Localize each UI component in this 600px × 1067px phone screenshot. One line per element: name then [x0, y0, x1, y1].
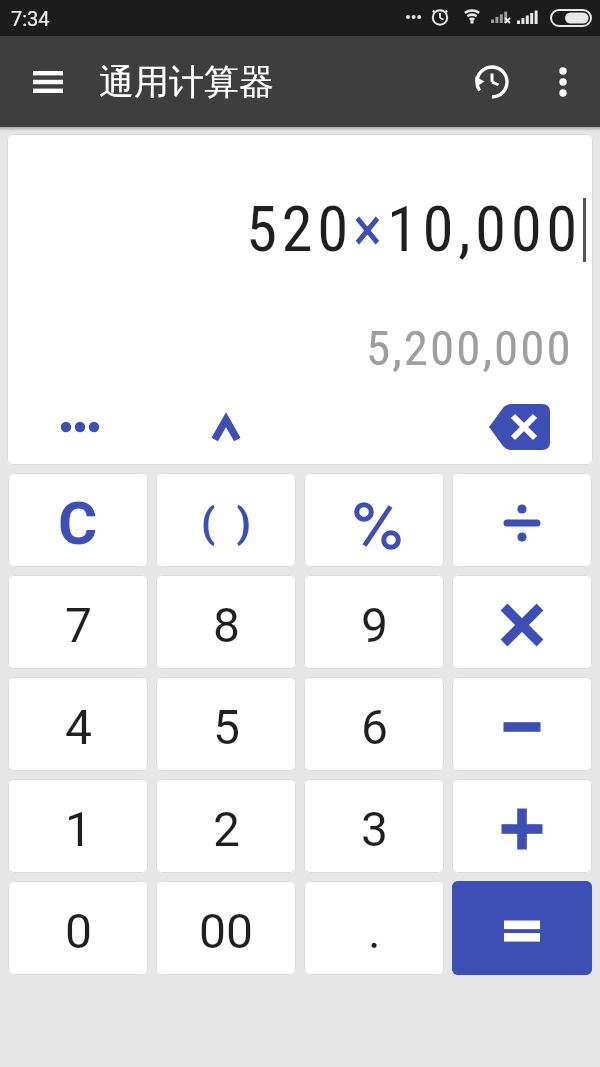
- button[interactable]: 7: [8, 575, 148, 669]
- staticText: 8: [213, 597, 240, 653]
- button[interactable]: 9: [304, 575, 444, 669]
- button[interactable]: [452, 881, 592, 975]
- staticText: 7: [65, 597, 92, 653]
- button[interactable]: 4: [8, 677, 148, 771]
- button[interactable]: [7, 389, 153, 465]
- button[interactable]: [452, 779, 592, 873]
- staticText: 2: [213, 801, 240, 857]
- button[interactable]: 6: [304, 677, 444, 771]
- staticText: 7:34: [11, 7, 50, 30]
- staticText: C: [58, 488, 98, 558]
- button[interactable]: [540, 59, 586, 105]
- staticText: (): [201, 499, 272, 547]
- staticText: 520×10,000: [246, 193, 582, 267]
- button[interactable]: [304, 473, 444, 567]
- staticText: 通用计算器: [99, 60, 274, 104]
- button[interactable]: 8: [156, 575, 296, 669]
- staticText: 6: [361, 699, 388, 755]
- button[interactable]: 3: [304, 779, 444, 873]
- button[interactable]: 5: [156, 677, 296, 771]
- button[interactable]: [153, 389, 299, 465]
- button[interactable]: (): [156, 473, 296, 567]
- button[interactable]: [452, 575, 592, 669]
- staticText: 00: [199, 903, 253, 959]
- button[interactable]: [18, 52, 78, 112]
- staticText: 1: [65, 801, 92, 857]
- button[interactable]: [452, 473, 592, 567]
- staticText: 0: [65, 903, 92, 959]
- button[interactable]: 0: [8, 881, 148, 975]
- button[interactable]: 2: [156, 779, 296, 873]
- staticText: 9: [361, 597, 388, 653]
- button[interactable]: [452, 677, 592, 771]
- button[interactable]: 00: [156, 881, 296, 975]
- button[interactable]: [446, 389, 593, 465]
- staticText: .: [368, 903, 381, 959]
- button[interactable]: 1: [8, 779, 148, 873]
- staticText: 3: [361, 801, 388, 857]
- staticText: 5,200,000: [366, 320, 573, 377]
- button[interactable]: [465, 55, 519, 109]
- staticText: 5: [213, 699, 240, 755]
- button[interactable]: C: [8, 473, 148, 567]
- staticText: 4: [65, 699, 92, 755]
- button[interactable]: .: [304, 881, 444, 975]
